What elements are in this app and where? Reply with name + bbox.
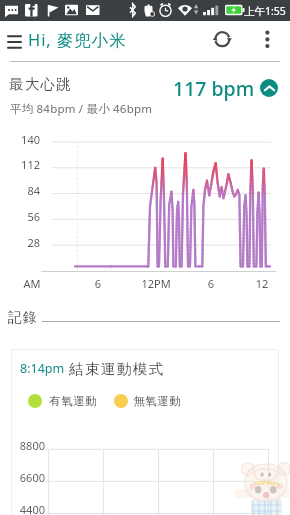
staticText: 8800 [11,438,45,453]
staticText: 最大心跳 [9,75,72,93]
staticText: 28 [0,235,40,250]
button[interactable]: Refresh [205,21,240,58]
staticText: AM [12,276,52,291]
staticText: 有氧運動 [49,394,97,408]
staticText: 平均 84bpm / 最小 46bpm [10,101,153,117]
button[interactable]: Collapse section [260,79,278,97]
staticText: 84 [0,183,40,198]
staticText: Hi, 麥兜小米 [28,28,127,51]
staticText: 6 [191,276,231,291]
staticText: 無氧運動 [133,394,181,408]
staticText: 6 [78,276,118,291]
staticText: 上午1:55 [244,4,286,18]
button[interactable]: Open navigation menu [0,21,28,62]
staticText: 6600 [11,470,45,485]
staticText: 12 [242,276,282,291]
staticText: 4400 [11,502,45,515]
staticText: 8:14pm [20,360,65,377]
staticText: 112 [0,157,40,172]
staticText: 56 [0,209,40,224]
staticText: 結束運動模式 [69,360,165,378]
staticText: 12PM [136,276,176,291]
button[interactable]: 8:14pm [11,349,279,515]
button[interactable]: More options [254,21,282,58]
staticText: 117 bpm [173,75,255,102]
staticText: 140 [0,132,40,147]
staticText: 記錄 [8,309,38,327]
